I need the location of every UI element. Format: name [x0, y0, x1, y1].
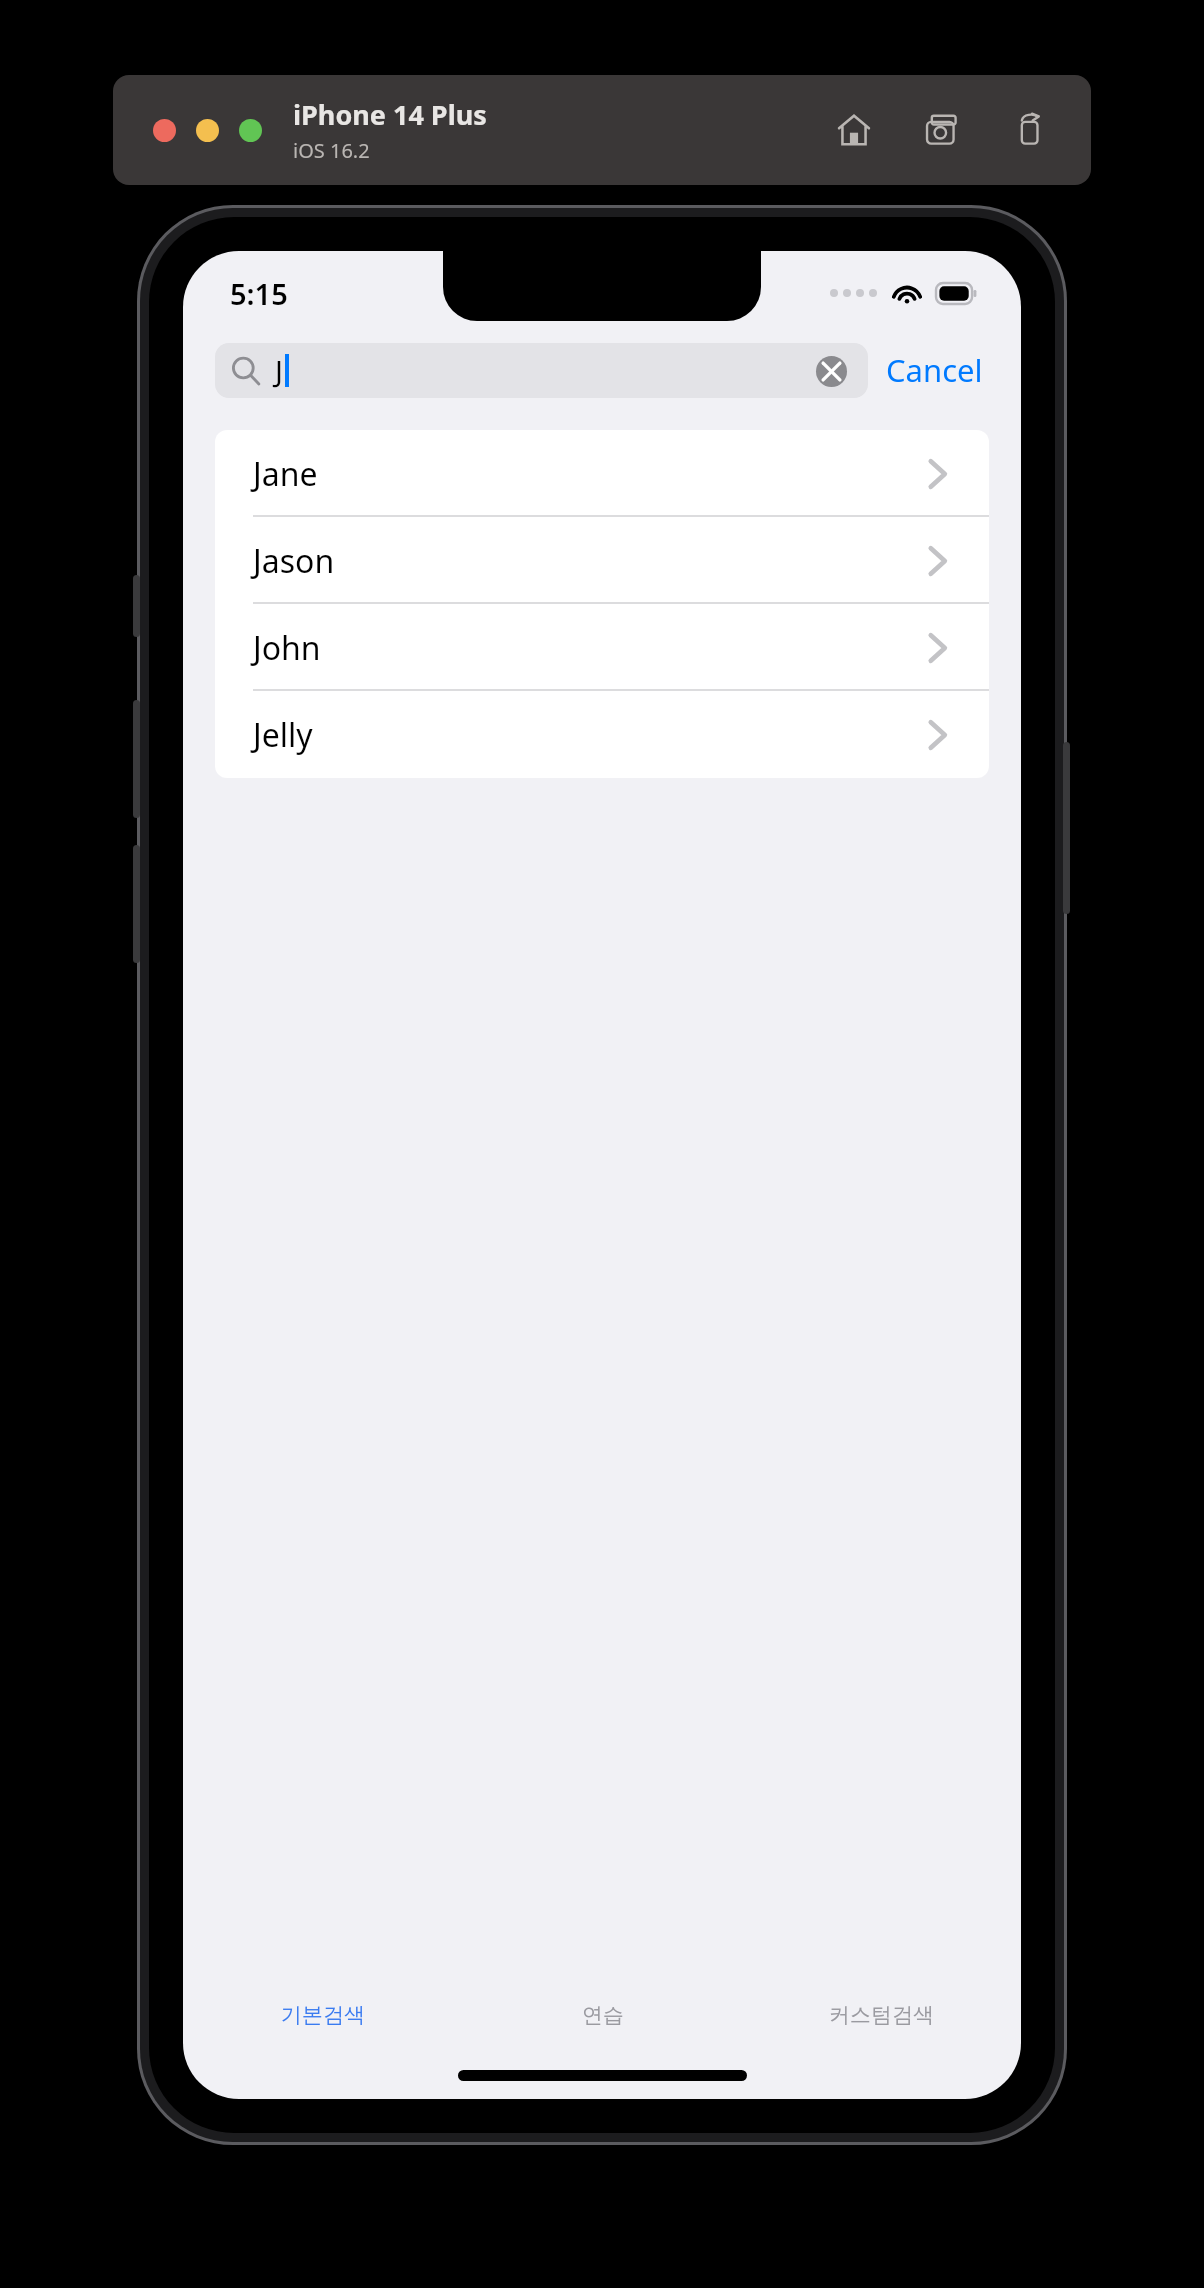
- button[interactable]: John: [215, 604, 989, 691]
- staticText: Jelly: [253, 713, 313, 757]
- staticText: Cancel: [886, 349, 983, 391]
- staticText: Jane: [253, 452, 318, 496]
- button[interactable]: Clear text: [810, 350, 852, 392]
- staticText: 커스텀검색: [829, 2002, 934, 2028]
- staticText: John: [253, 626, 321, 670]
- button[interactable]: Jelly: [215, 691, 989, 778]
- button[interactable]: 연습: [463, 1987, 742, 2043]
- staticText: 기본검색: [281, 2002, 365, 2028]
- button[interactable]: Home: [831, 107, 877, 153]
- staticText: Jason: [253, 539, 335, 583]
- button[interactable]: Cancel: [868, 341, 1001, 399]
- button[interactable]: Minimize: [196, 119, 219, 142]
- button[interactable]: J: [215, 343, 868, 398]
- staticText: iOS 16.2: [293, 137, 370, 164]
- staticText: 5:15: [230, 274, 288, 313]
- staticText: iPhone 14 Plus: [293, 96, 487, 133]
- button[interactable]: 커스텀검색: [742, 1987, 1021, 2043]
- staticText: J: [275, 351, 283, 390]
- staticText: 연습: [582, 2002, 624, 2028]
- button[interactable]: Jane: [215, 430, 989, 517]
- button[interactable]: Screenshot: [919, 107, 965, 153]
- button[interactable]: Jason: [215, 517, 989, 604]
- button[interactable]: Share: [1007, 107, 1053, 153]
- button[interactable]: Zoom: [239, 119, 262, 142]
- button[interactable]: 기본검색: [183, 1987, 463, 2043]
- button[interactable]: Close: [153, 119, 176, 142]
